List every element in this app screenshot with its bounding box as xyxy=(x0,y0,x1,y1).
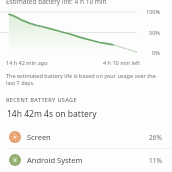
staticText: Estimated battery life: 4 h 10 min xyxy=(6,0,107,6)
staticText: Android System xyxy=(27,155,83,165)
staticText: 100% xyxy=(146,8,161,15)
staticText: The estimated battery life is based on y… xyxy=(6,72,158,86)
staticText: RECENT BATTERY USAGE xyxy=(6,96,77,103)
staticText: Screen xyxy=(27,132,51,142)
button[interactable]: Screen xyxy=(0,126,172,148)
staticText: 11% xyxy=(149,156,162,165)
staticText: 14h 42m 4s on battery xyxy=(7,108,97,120)
staticText: 26% xyxy=(149,133,162,142)
staticText: 4 h 10 min left xyxy=(103,59,140,66)
button[interactable]: Android System xyxy=(0,149,172,171)
staticText: 0% xyxy=(152,49,160,56)
staticText: 14 h 42 min ago xyxy=(6,59,48,66)
staticText: 50% xyxy=(149,29,160,36)
